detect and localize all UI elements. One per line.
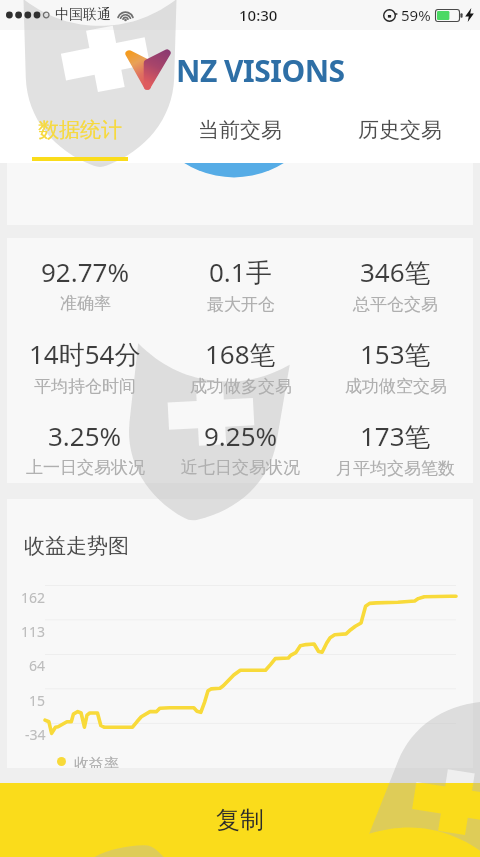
staticText: 当前交易	[198, 117, 282, 143]
button[interactable]: 当前交易	[160, 96, 320, 163]
staticText: 近七日交易状况	[181, 457, 300, 478]
staticText: 准确率	[60, 293, 111, 314]
staticText: 复制	[216, 805, 264, 835]
staticText: 最大开仓	[207, 294, 275, 315]
staticText: 总平仓交易	[353, 294, 438, 315]
staticText: 162	[21, 588, 46, 606]
staticText: 92.77%	[41, 254, 130, 289]
staticText: 历史交易	[358, 117, 442, 143]
button[interactable]: 历史交易	[320, 96, 480, 163]
staticText: 346笔	[360, 254, 431, 290]
staticText: 收益走势图	[24, 533, 129, 559]
staticText: 3.25%	[48, 418, 122, 453]
staticText: NZ VISIONS	[176, 50, 345, 91]
button[interactable]: 数据统计	[0, 96, 160, 163]
staticText: -34	[25, 725, 46, 743]
staticText: 64	[29, 656, 46, 674]
staticText: 59%	[401, 5, 431, 25]
staticText: 153笔	[360, 336, 431, 372]
staticText: 成功做多交易	[190, 376, 292, 397]
staticText: 0.1手	[209, 254, 272, 290]
staticText: 9.25%	[204, 418, 278, 453]
staticText: 成功做空交易	[345, 376, 447, 397]
staticText: 平均持仓时间	[34, 376, 136, 397]
staticText: 中国联通	[55, 6, 111, 24]
staticText: 上一日交易状况	[26, 457, 145, 478]
staticText: 数据统计	[38, 117, 122, 143]
staticText: 168笔	[205, 336, 276, 372]
button[interactable]: 复制	[0, 783, 480, 857]
staticText: 10:30	[239, 5, 278, 25]
staticText: 收益率	[74, 755, 119, 768]
staticText: 113	[21, 622, 46, 640]
staticText: 14时54分	[29, 336, 141, 372]
staticText: 月平均交易笔数	[336, 458, 455, 479]
staticText: 173笔	[360, 418, 431, 454]
staticText: 15	[29, 691, 46, 709]
